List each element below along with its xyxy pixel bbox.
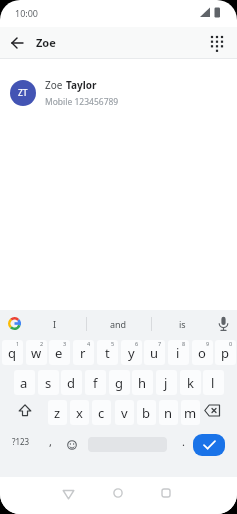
button[interactable]: b	[135, 399, 157, 426]
staticText: u	[150, 344, 159, 362]
staticText: z	[54, 404, 61, 422]
button[interactable]: d	[59, 369, 83, 396]
staticText: Mobile 123456789	[45, 96, 119, 108]
staticText: 5	[111, 340, 115, 347]
staticText: a	[20, 374, 28, 392]
button[interactable]: j	[154, 369, 178, 396]
staticText: 7	[158, 340, 162, 347]
button[interactable]: w	[24, 339, 48, 366]
staticText: 3	[63, 340, 67, 347]
staticText: s	[45, 374, 52, 392]
staticText: 4	[87, 340, 91, 347]
staticText: f	[93, 374, 98, 392]
button[interactable]	[193, 434, 225, 456]
button[interactable]	[161, 488, 171, 498]
button[interactable]	[218, 316, 229, 332]
staticText: 9	[206, 340, 210, 347]
button[interactable]	[8, 317, 21, 330]
staticText: h	[138, 374, 147, 392]
button[interactable]: i	[166, 339, 190, 366]
button[interactable]	[113, 488, 123, 498]
staticText: 8	[182, 340, 186, 347]
button[interactable]: q	[0, 339, 24, 366]
button[interactable]: v	[113, 399, 135, 426]
button[interactable]: and	[90, 310, 146, 338]
button[interactable]: ?123	[6, 429, 36, 454]
button[interactable]: k	[178, 369, 202, 396]
staticText: I	[53, 318, 57, 330]
staticText: l	[211, 374, 215, 392]
button[interactable]: c	[90, 399, 112, 426]
button[interactable]: l	[201, 369, 225, 396]
staticText: k	[187, 374, 194, 392]
staticText: q	[8, 344, 16, 362]
button[interactable]: e	[47, 339, 71, 366]
button[interactable]: is	[154, 310, 210, 338]
staticText: Zoe	[36, 35, 56, 50]
staticText: r	[80, 344, 86, 362]
staticText: v	[121, 404, 128, 422]
staticText: c	[98, 404, 105, 422]
button[interactable]: m	[179, 399, 201, 426]
button[interactable]	[210, 35, 224, 52]
button[interactable]: r	[71, 339, 95, 366]
staticText: ?123	[12, 436, 30, 447]
staticText: Zoe	[45, 78, 66, 92]
staticText: 0	[229, 340, 233, 347]
button[interactable]: s	[36, 369, 60, 396]
staticText: w	[31, 344, 42, 362]
staticText: Taylor	[66, 78, 97, 92]
staticText: b	[142, 404, 150, 422]
button[interactable]: p	[213, 339, 237, 366]
staticText: y	[128, 344, 135, 362]
staticText: 6	[135, 340, 139, 347]
staticText: 10:00	[15, 7, 39, 19]
staticText: 2	[40, 340, 44, 347]
staticText: .	[182, 434, 185, 449]
button[interactable]	[18, 404, 32, 417]
staticText: ,	[49, 434, 52, 449]
staticText: m	[184, 404, 197, 422]
staticText: and	[110, 318, 127, 330]
button[interactable]: .	[174, 429, 192, 454]
button[interactable]: o	[190, 339, 214, 366]
button[interactable]: y	[119, 339, 143, 366]
staticText: j	[164, 374, 168, 392]
button[interactable]: n	[157, 399, 179, 426]
button[interactable]	[11, 37, 24, 49]
button[interactable]: z	[46, 399, 68, 426]
staticText: e	[55, 344, 63, 362]
button[interactable]: f	[83, 369, 107, 396]
button[interactable]	[62, 489, 75, 500]
staticText: 1	[16, 340, 20, 347]
button[interactable]	[67, 440, 77, 450]
staticText: is	[179, 318, 186, 330]
button[interactable]: h	[130, 369, 154, 396]
button[interactable]: ZT	[0, 72, 237, 114]
staticText: d	[67, 374, 75, 392]
staticText: g	[115, 374, 123, 392]
button[interactable]: x	[68, 399, 90, 426]
staticText: t	[105, 344, 110, 362]
staticText: o	[198, 344, 206, 362]
staticText: n	[164, 404, 173, 422]
staticText: p	[221, 344, 229, 362]
button[interactable]: u	[142, 339, 166, 366]
button[interactable]: a	[12, 369, 36, 396]
button[interactable]: t	[95, 339, 119, 366]
button[interactable]: ,	[41, 429, 59, 454]
button[interactable]: I	[25, 310, 84, 338]
staticText: ZT	[18, 87, 28, 99]
button[interactable]: g	[107, 369, 131, 396]
button[interactable]	[204, 404, 221, 417]
staticText: i	[176, 344, 180, 362]
staticText: x	[76, 404, 83, 422]
